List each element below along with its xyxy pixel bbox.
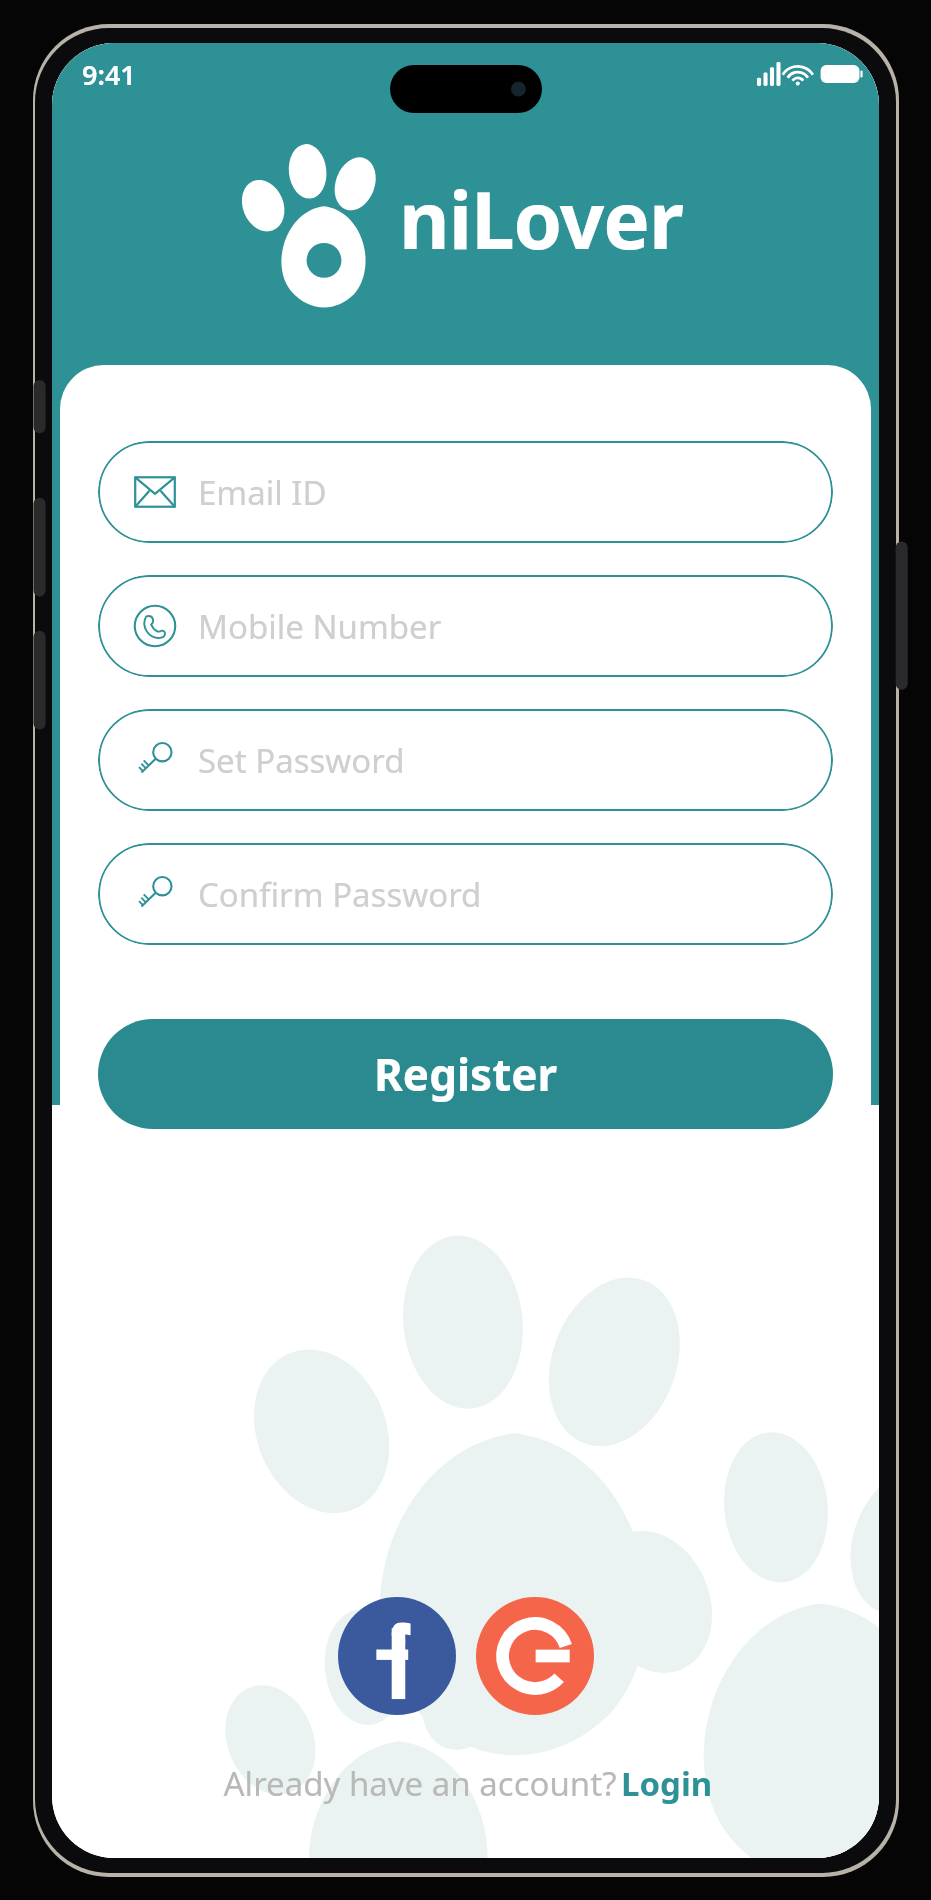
button[interactable]: Confirm Password	[98, 843, 833, 945]
staticText: Register	[374, 1044, 558, 1104]
button[interactable]: Sign up with Facebook	[338, 1597, 456, 1715]
staticText: Email ID	[198, 470, 327, 515]
staticText: Confirm Password	[198, 872, 482, 917]
staticText: niLover	[399, 166, 683, 272]
staticText: Set Password	[198, 738, 405, 783]
button[interactable]: Set Password	[98, 709, 833, 811]
button[interactable]: Already have an account?	[52, 1761, 879, 1806]
staticText: Mobile Number	[198, 604, 442, 649]
button[interactable]: Email ID	[98, 441, 833, 543]
staticText: Already have an account?	[219, 1761, 621, 1806]
button[interactable]: Sign up with Google	[476, 1597, 594, 1715]
button[interactable]: Mobile Number	[98, 575, 833, 677]
staticText: Login	[621, 1761, 713, 1806]
button[interactable]: Register	[98, 1019, 833, 1129]
staticText: 9:41	[82, 56, 136, 93]
